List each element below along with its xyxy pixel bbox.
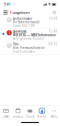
button[interactable]: S — [0, 29, 60, 42]
staticText: S — [9, 31, 10, 34]
staticText: Termine — [12, 115, 23, 118]
staticText: Ihre Premium-Vorteile — [13, 46, 45, 50]
button[interactable]: Cloud — [24, 108, 36, 118]
staticText: 11:48 — [48, 30, 57, 33]
staticText: Cloud — [25, 115, 34, 118]
button[interactable]: Mehr — [48, 108, 60, 118]
button[interactable]: A — [0, 16, 60, 29]
button[interactable]: Menu — [1, 9, 9, 16]
staticText: Konto — [37, 115, 46, 118]
staticText: Authenticator — [13, 17, 32, 20]
staticText: Ihr Sicherheitscode — [13, 20, 40, 24]
staticText: A — [8, 18, 10, 22]
button[interactable]: Termine — [12, 108, 24, 118]
button[interactable]: Konto — [36, 108, 48, 118]
staticText: E-Mail — [2, 115, 9, 118]
staticText: 1 ungelesen — [9, 10, 29, 15]
staticText: O — [8, 44, 10, 47]
staticText: Mehr — [50, 115, 57, 118]
staticText: 12:09 — [48, 17, 57, 20]
staticText: 09:32 — [48, 43, 57, 46]
button[interactable]: Account — [50, 9, 58, 16]
staticText: WICHTIG — NEUE Information — [13, 33, 56, 37]
staticText: Sparkasse — [13, 30, 27, 33]
staticText: Sehr geehrte Kundin — [13, 37, 44, 40]
staticText: 9:41 — [4, 3, 11, 6]
button[interactable]: E-Mail — [0, 108, 12, 118]
staticText: Jetzt entdecken — [13, 50, 35, 53]
button[interactable]: O — [0, 42, 60, 54]
staticText: Code 492 188 — [13, 24, 35, 28]
staticText: Otto — [13, 43, 19, 46]
